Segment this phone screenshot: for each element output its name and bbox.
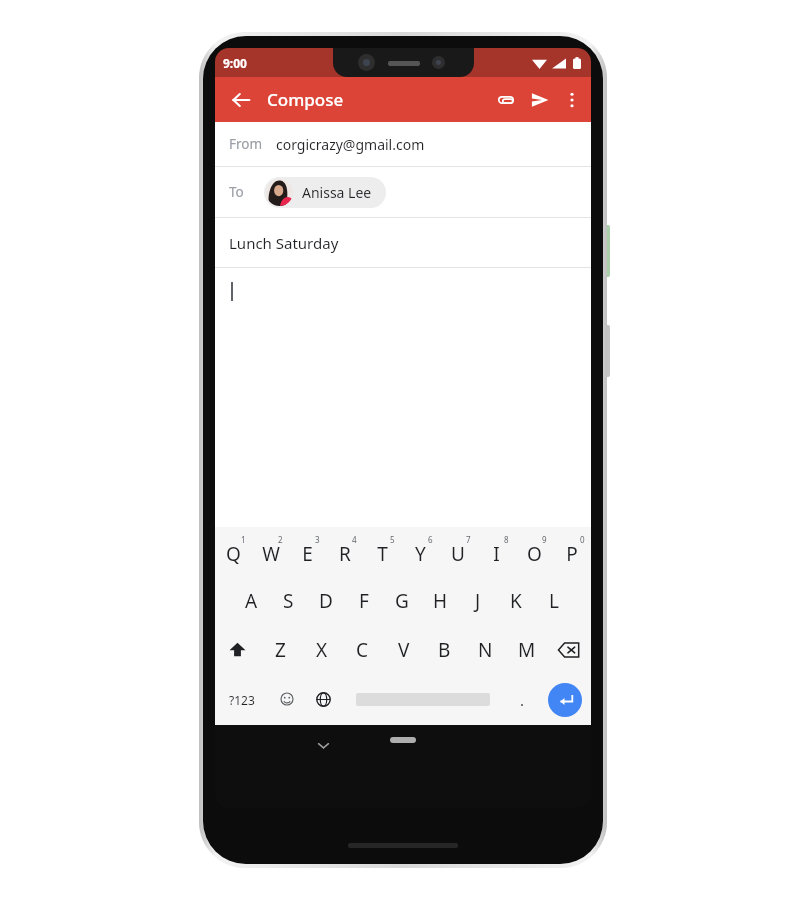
- staticText: 7: [466, 534, 471, 545]
- staticText: G: [395, 588, 409, 614]
- button[interactable]: P: [553, 527, 591, 576]
- button[interactable]: .: [505, 674, 539, 725]
- staticText: Compose: [267, 88, 344, 111]
- staticText: A: [245, 588, 258, 614]
- staticText: C: [356, 637, 369, 663]
- button[interactable]: ?123: [215, 674, 269, 725]
- staticText: Anissa Lee: [302, 183, 372, 202]
- staticText: From: [229, 135, 263, 153]
- staticText: 9:00: [223, 55, 247, 71]
- staticText: H: [433, 588, 448, 614]
- staticText: M: [518, 637, 536, 663]
- staticText: Q: [226, 541, 241, 567]
- staticText: corgicrazy@gmail.com: [276, 135, 425, 154]
- staticText: U: [451, 541, 465, 567]
- button[interactable]: Back: [225, 84, 257, 116]
- button[interactable]: Backspace: [547, 625, 591, 674]
- button[interactable]: E: [289, 527, 326, 576]
- button[interactable]: A: [233, 576, 270, 625]
- staticText: 1: [241, 534, 246, 545]
- button[interactable]: Enter: [548, 683, 582, 717]
- button[interactable]: M: [506, 625, 547, 674]
- staticText: 0: [580, 534, 585, 545]
- staticText: Lunch Saturday: [229, 233, 339, 253]
- staticText: ?123: [229, 692, 255, 708]
- button[interactable]: Hide keyboard: [313, 735, 333, 755]
- button[interactable]: L: [535, 576, 573, 625]
- staticText: D: [319, 588, 333, 614]
- staticText: B: [438, 637, 451, 663]
- staticText: W: [262, 541, 280, 567]
- button[interactable]: Lunch Saturday: [215, 218, 591, 267]
- staticText: L: [549, 588, 559, 614]
- staticText: 6: [428, 534, 433, 545]
- button[interactable]: H: [421, 576, 459, 625]
- staticText: Z: [275, 637, 286, 663]
- button[interactable]: D: [307, 576, 345, 625]
- button[interactable]: J: [459, 576, 497, 625]
- staticText: X: [316, 637, 328, 663]
- staticText: Y: [415, 541, 426, 567]
- button[interactable]: V: [383, 625, 424, 674]
- staticText: 3: [315, 534, 320, 545]
- staticText: K: [510, 588, 522, 614]
- button[interactable]: Space: [341, 674, 505, 725]
- button[interactable]: X: [301, 625, 342, 674]
- staticText: To: [229, 183, 244, 201]
- staticText: V: [398, 637, 410, 663]
- button[interactable]: S: [270, 576, 307, 625]
- button[interactable]: F: [345, 576, 383, 625]
- staticText: N: [478, 637, 493, 663]
- button[interactable]: T: [363, 527, 401, 576]
- staticText: .: [520, 690, 525, 710]
- button[interactable]: W: [252, 527, 289, 576]
- staticText: P: [566, 541, 578, 567]
- button[interactable]: Home: [390, 737, 416, 743]
- button[interactable]: Change language: [305, 674, 341, 725]
- staticText: 2: [278, 534, 283, 545]
- button[interactable]: C: [342, 625, 383, 674]
- staticText: R: [339, 541, 351, 567]
- button[interactable]: B: [424, 625, 465, 674]
- staticText: O: [527, 541, 542, 567]
- staticText: E: [302, 541, 313, 567]
- button[interactable]: Emoji: [269, 674, 305, 725]
- button[interactable]: U: [439, 527, 477, 576]
- button[interactable]: G: [383, 576, 421, 625]
- staticText: 5: [390, 534, 395, 545]
- button[interactable]: Y: [401, 527, 439, 576]
- button[interactable]: Q: [215, 527, 252, 576]
- staticText: 4: [352, 534, 357, 545]
- staticText: 9: [542, 534, 547, 545]
- button[interactable]: O: [515, 527, 553, 576]
- staticText: F: [359, 588, 369, 614]
- button[interactable]: N: [465, 625, 506, 674]
- staticText: J: [475, 588, 481, 614]
- button[interactable]: [215, 268, 591, 527]
- staticText: S: [283, 588, 294, 614]
- button[interactable]: R: [326, 527, 363, 576]
- button[interactable]: I: [477, 527, 515, 576]
- button[interactable]: To: [215, 167, 591, 217]
- button[interactable]: Attach: [489, 83, 523, 117]
- button[interactable]: From: [215, 122, 591, 166]
- staticText: I: [493, 541, 500, 567]
- button[interactable]: Shift: [215, 625, 259, 674]
- button[interactable]: Send: [523, 83, 557, 117]
- staticText: T: [377, 541, 388, 567]
- button[interactable]: Z: [259, 625, 301, 674]
- button[interactable]: K: [497, 576, 535, 625]
- button[interactable]: Anissa Lee: [264, 177, 386, 208]
- staticText: 8: [504, 534, 509, 545]
- button[interactable]: More options: [557, 85, 587, 115]
